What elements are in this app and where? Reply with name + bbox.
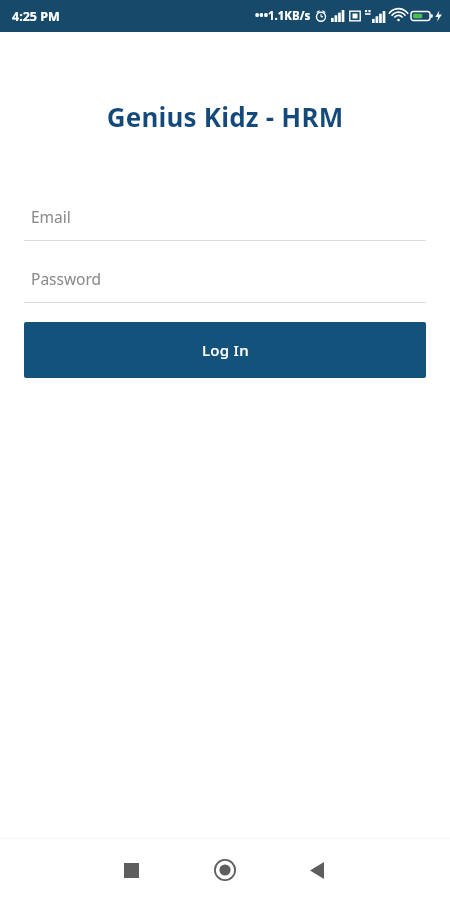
- staticText: •••1.1KB/s: [255, 8, 311, 24]
- button[interactable]: Home: [201, 846, 249, 894]
- button[interactable]: Email: [24, 192, 426, 241]
- staticText: Log In: [202, 340, 249, 360]
- button[interactable]: Password: [24, 254, 426, 303]
- button[interactable]: Log In: [24, 322, 426, 378]
- button[interactable]: Back: [293, 846, 341, 894]
- button[interactable]: Recents: [107, 846, 155, 894]
- staticText: Password: [31, 268, 102, 289]
- staticText: Email: [31, 206, 71, 227]
- staticText: Genius Kidz - HRM: [0, 99, 450, 134]
- staticText: 4:25 PM: [12, 8, 60, 25]
